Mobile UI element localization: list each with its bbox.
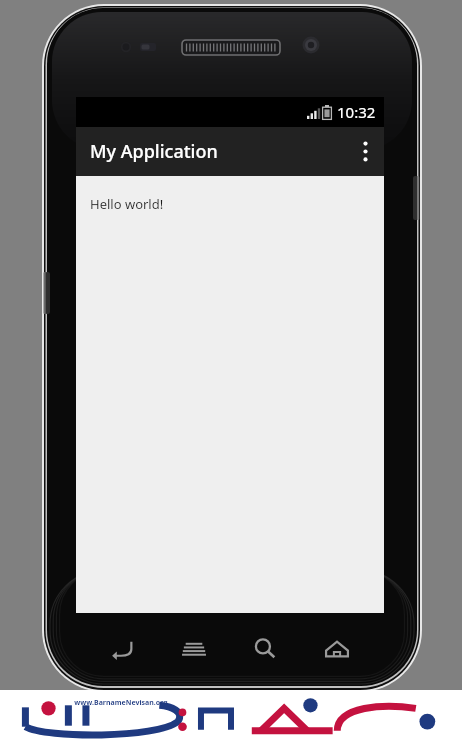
button[interactable]: Search bbox=[241, 625, 289, 673]
staticText: Hello world! bbox=[90, 195, 164, 213]
button[interactable]: More options bbox=[346, 127, 384, 176]
button[interactable]: Menu bbox=[170, 625, 218, 673]
staticText: My Application bbox=[90, 139, 218, 164]
button[interactable]: Home bbox=[313, 625, 361, 673]
staticText: 10:32 bbox=[337, 102, 376, 122]
button[interactable]: Back bbox=[98, 625, 146, 673]
staticText: www.BarnameNevisan.org bbox=[74, 698, 168, 708]
